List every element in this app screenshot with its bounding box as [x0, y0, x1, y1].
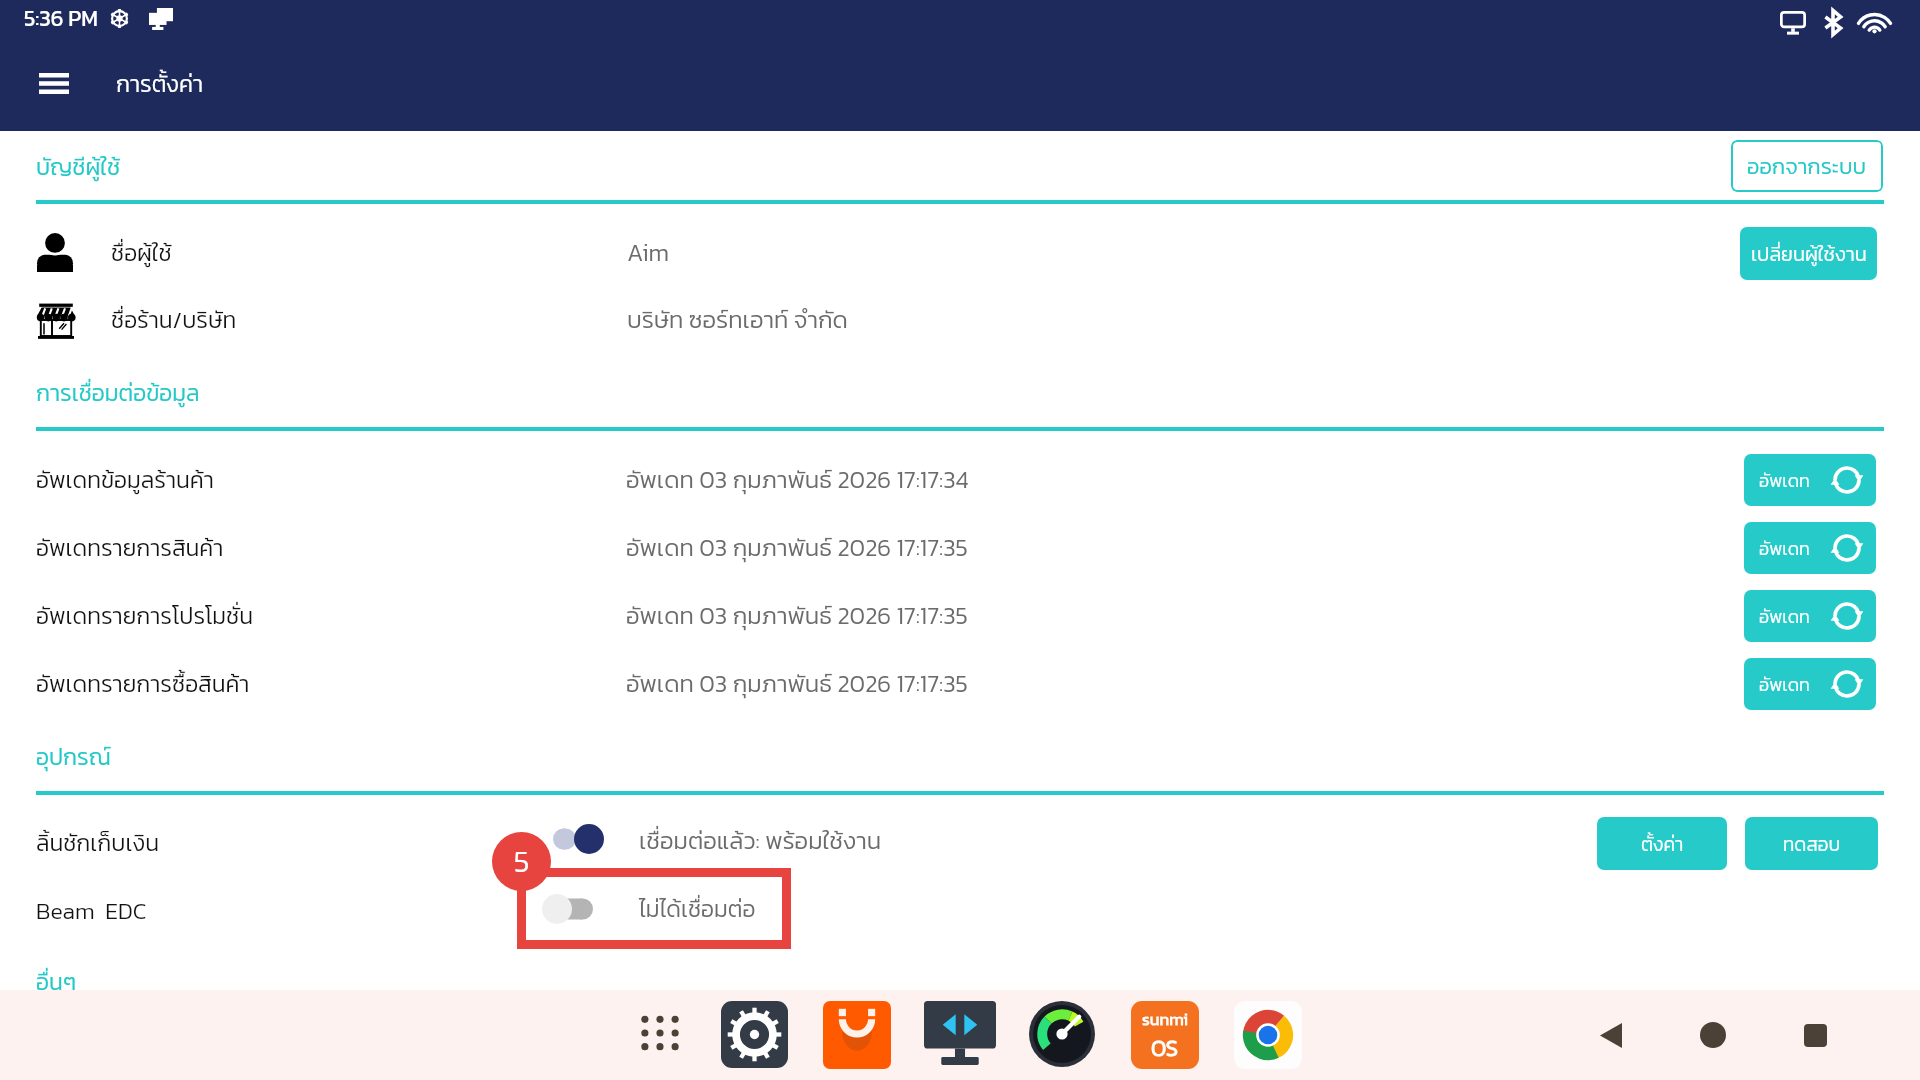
staticText: ชื่อร้าน/บริษัท [111, 303, 237, 337]
staticText: อัพเดทรายการสินค้า [36, 531, 224, 565]
button[interactable]: App [1234, 1001, 1302, 1069]
button[interactable]: อัพเดท [1744, 522, 1876, 574]
staticText: อัพเดทรายการซื้อสินค้า [36, 667, 250, 701]
button[interactable]: อัพเดท [1744, 590, 1876, 642]
button[interactable]: App [823, 1001, 891, 1069]
staticText: Aim [627, 235, 670, 271]
staticText: อัพเดทรายการโปรโมชั่น [36, 599, 253, 633]
staticText: อัพเดท [1759, 535, 1810, 562]
button[interactable]: Home [1685, 1007, 1741, 1063]
staticText: อัพเดท [1759, 671, 1810, 698]
staticText: อุปกรณ์ [36, 740, 111, 774]
staticText: ลิ้นชักเก็บเงิน [36, 826, 159, 860]
staticText: ชื่อผู้ใช้ [111, 236, 172, 270]
staticText: อัพเดท [1759, 603, 1810, 630]
staticText: บัญชีผู้ใช้ [36, 150, 121, 184]
button[interactable]: Recents [1787, 1007, 1843, 1063]
staticText: ทดสอบ [1783, 830, 1841, 858]
staticText: 5:36 PM [24, 2, 98, 35]
staticText: อัพเดท 03 กุมภาพันธ์ 2026 17:17:35 [626, 598, 968, 634]
staticText: อัพเดท 03 กุมภาพันธ์ 2026 17:17:34 [626, 462, 969, 498]
button[interactable]: Remote [924, 1001, 996, 1067]
button[interactable]: All apps [629, 1002, 691, 1064]
button[interactable]: Beam EDC connection toggle [527, 894, 597, 924]
staticText: เชื่อมต่อแล้ว: พร้อมใช้งาน [639, 823, 882, 859]
staticText: ออกจากระบบ [1747, 150, 1867, 183]
staticText: 5 [514, 839, 530, 884]
staticText: การตั้งค่า [116, 67, 204, 101]
button[interactable]: Sunmi OS [1131, 1001, 1199, 1069]
button[interactable]: App [721, 1001, 788, 1068]
button[interactable]: Menu [25, 54, 83, 112]
button[interactable]: Back [1583, 1007, 1639, 1063]
button[interactable]: ออกจากระบบ [1731, 140, 1883, 192]
staticText: เปลี่ยนผู้ใช้งาน [1751, 239, 1867, 269]
staticText: ไม่ได้เชื่อมต่อ [639, 892, 756, 926]
staticText: อัพเดท [1759, 467, 1810, 494]
button[interactable]: อัพเดท [1744, 454, 1876, 506]
button[interactable]: อัพเดท [1744, 658, 1876, 710]
staticText: อัพเดท 03 กุมภาพันธ์ 2026 17:17:35 [626, 530, 968, 566]
staticText: ตั้งค่า [1641, 830, 1684, 858]
button[interactable]: Cash drawer connection toggle [550, 824, 610, 854]
staticText: Beam EDC [36, 894, 147, 928]
staticText: บริษัท ซอร์ทเอาท์ จำกัด [627, 302, 848, 338]
button[interactable]: Diagnostics [1026, 1001, 1098, 1067]
button[interactable]: เปลี่ยนผู้ใช้งาน [1740, 227, 1877, 280]
button[interactable]: ทดสอบ [1745, 817, 1878, 870]
staticText: อัพเดทข้อมูลร้านค้า [36, 463, 214, 497]
staticText: อัพเดท 03 กุมภาพันธ์ 2026 17:17:35 [626, 666, 968, 702]
staticText: OS [1151, 1032, 1179, 1065]
staticText: การเชื่อมต่อข้อมูล [36, 376, 200, 410]
button[interactable]: ตั้งค่า [1597, 817, 1727, 870]
staticText: อื่นๆ [36, 965, 77, 999]
staticText: sunmi [1142, 1006, 1188, 1031]
